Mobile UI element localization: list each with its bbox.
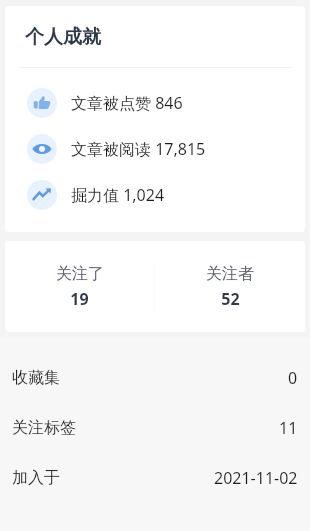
button[interactable]: 关注者	[155, 241, 305, 332]
staticText: 0	[288, 367, 298, 389]
staticText: 52	[221, 288, 240, 310]
button[interactable]: 掘力值 1,024	[5, 172, 305, 218]
button[interactable]: 文章被点赞 846	[5, 80, 305, 126]
staticText: 掘力值 1,024	[71, 184, 165, 206]
staticText: 文章被阅读 17,815	[71, 138, 206, 160]
button[interactable]: 关注了	[5, 241, 154, 332]
button[interactable]: 关注标签	[0, 403, 310, 453]
staticText: 文章被点赞 846	[71, 92, 183, 114]
staticText: 收藏集	[12, 368, 60, 388]
button[interactable]: 收藏集	[0, 353, 310, 403]
staticText: 个人成就	[25, 25, 101, 49]
staticText: 2021-11-02	[214, 467, 298, 489]
staticText: 关注者	[206, 264, 254, 284]
staticText: 关注标签	[12, 418, 76, 438]
staticText: 11	[279, 417, 298, 439]
button[interactable]: 加入于	[0, 453, 310, 503]
button[interactable]: 文章被阅读 17,815	[5, 126, 305, 172]
staticText: 19	[70, 288, 89, 310]
staticText: 关注了	[56, 264, 104, 284]
staticText: 加入于	[12, 468, 60, 488]
